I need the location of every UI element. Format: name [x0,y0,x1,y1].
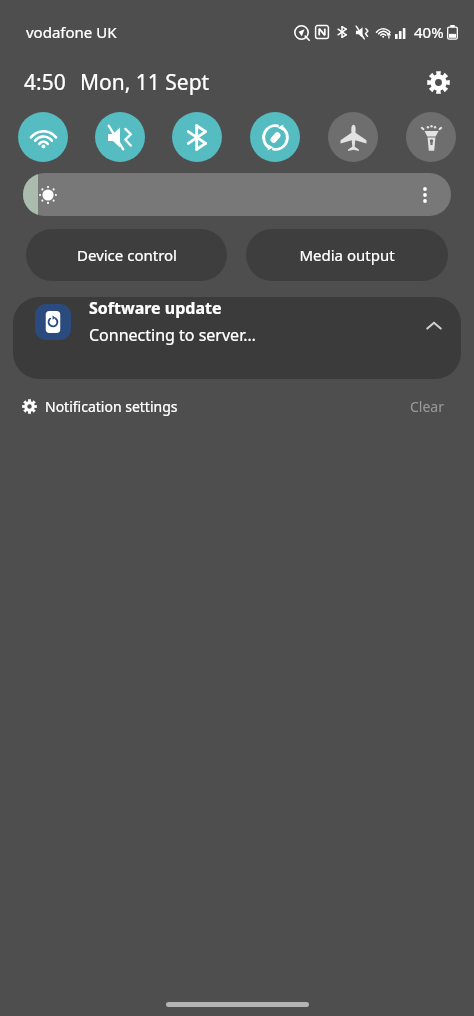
button[interactable]: Bluetooth [172,112,222,162]
button[interactable]: 4:50 [24,68,66,97]
staticText: 40% [414,22,444,42]
staticText: vodafone UK [26,22,117,42]
staticText: Clear [410,397,444,416]
button[interactable]: Flight mode [328,112,378,162]
button[interactable]: Clear [402,393,452,420]
staticText: Media output [299,245,395,265]
button[interactable]: Wi-Fi [18,112,68,162]
button[interactable]: Notification settings [18,394,182,419]
button[interactable]: Auto rotate [250,112,300,162]
button[interactable]: Software update [13,297,461,379]
button[interactable]: Brightness [23,173,451,216]
button[interactable]: Media output [246,229,448,281]
button[interactable]: Brightness options [411,181,439,209]
button[interactable]: Settings [416,60,460,104]
button[interactable]: Torch [406,112,456,162]
button[interactable]: Collapse [417,309,451,343]
staticText: Notification settings [45,397,178,416]
button[interactable]: Device control [26,229,227,281]
staticText: Device control [77,245,177,265]
staticText: Software update [89,297,222,319]
button[interactable]: Mon, 11 Sept [80,68,210,97]
staticText: Connecting to server… [89,324,256,346]
button[interactable]: Sound off [95,112,145,162]
